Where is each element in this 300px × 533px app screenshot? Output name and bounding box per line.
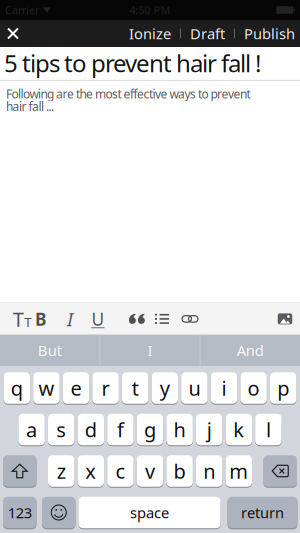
button[interactable]: v [137, 455, 163, 487]
button[interactable]: I [57, 306, 83, 332]
button[interactable]: h [166, 414, 193, 445]
button[interactable]: Ionize [129, 24, 171, 43]
staticText: y [160, 375, 170, 401]
button[interactable]: i [211, 372, 237, 404]
button[interactable]: B [28, 306, 54, 332]
button[interactable]: y [152, 372, 178, 404]
button[interactable]: r [92, 372, 119, 404]
staticText: w [38, 375, 54, 401]
staticText: z [57, 458, 66, 484]
button[interactable]: a [18, 414, 45, 445]
button[interactable] [123, 306, 149, 332]
staticText: q [11, 375, 23, 401]
button[interactable]: s [48, 414, 74, 445]
staticText: But [38, 340, 62, 360]
staticText: n [203, 458, 215, 484]
button[interactable]: x [78, 455, 104, 487]
staticText: c [115, 458, 125, 484]
staticText: u [188, 375, 200, 401]
button[interactable]: w [33, 372, 60, 404]
button[interactable]: Publish [244, 24, 300, 43]
button[interactable]: 123 [3, 497, 36, 528]
staticText: Publish [244, 24, 295, 43]
button[interactable]: e [63, 372, 89, 404]
button[interactable] [42, 497, 75, 528]
button[interactable]: q [4, 372, 30, 404]
staticText: 5 tips to prevent hair fall ! [4, 47, 261, 79]
staticText: Carrier [5, 3, 39, 17]
staticText: U [91, 307, 104, 330]
button[interactable] [272, 306, 298, 332]
staticText: j [207, 416, 212, 443]
button[interactable]: p [270, 372, 296, 404]
button[interactable]: f [107, 414, 134, 445]
button[interactable] [0, 28, 28, 38]
staticText: f [117, 416, 124, 443]
staticText: s [56, 416, 66, 443]
staticText: a [26, 416, 37, 443]
staticText: e [70, 375, 81, 401]
button[interactable] [177, 306, 203, 332]
button[interactable]: t [122, 372, 148, 404]
staticText: d [85, 416, 97, 443]
button[interactable]: c [107, 455, 134, 487]
button[interactable]: d [78, 414, 104, 445]
button[interactable]: return [227, 497, 297, 528]
button[interactable]: l [255, 414, 282, 445]
staticText: And [237, 340, 264, 360]
staticText: Ionize [129, 24, 171, 43]
staticText: return [241, 503, 284, 522]
staticText: i [221, 375, 226, 401]
button[interactable]: j [196, 414, 222, 445]
button[interactable]: m [226, 455, 252, 487]
staticText: 4:50 PM [129, 3, 170, 17]
staticText: k [233, 416, 244, 443]
button[interactable]: space [78, 497, 220, 528]
button[interactable] [3, 455, 36, 487]
staticText: o [248, 375, 260, 401]
button[interactable]: z [48, 455, 74, 487]
staticText: I [147, 340, 152, 360]
button[interactable]: I [100, 334, 200, 366]
staticText: hair fall ... [6, 98, 54, 114]
button[interactable] [263, 455, 297, 487]
staticText: g [144, 416, 156, 443]
button[interactable]: g [137, 414, 163, 445]
staticText: m [229, 458, 248, 484]
button[interactable]: o [240, 372, 267, 404]
button[interactable]: U [85, 306, 111, 332]
staticText: h [174, 416, 186, 443]
button[interactable]: n [196, 455, 222, 487]
staticText: space [130, 503, 169, 522]
button[interactable]: Draft [190, 24, 225, 43]
staticText: 123 [8, 503, 32, 522]
staticText: t [132, 375, 139, 401]
button[interactable]: b [166, 455, 193, 487]
staticText: T [13, 306, 24, 332]
staticText: l [266, 416, 271, 443]
staticText: Following are the most effective ways to… [6, 86, 250, 102]
button[interactable]: k [226, 414, 252, 445]
staticText: B [35, 307, 47, 330]
staticText: b [174, 458, 186, 484]
staticText: I [67, 306, 73, 331]
staticText: T [24, 313, 31, 331]
staticText: r [102, 375, 110, 401]
button[interactable]: T [9, 306, 35, 332]
staticText: x [85, 458, 96, 484]
staticText: Draft [190, 24, 225, 43]
button[interactable]: u [181, 372, 208, 404]
button[interactable]: And [201, 334, 300, 366]
button[interactable]: But [0, 334, 99, 366]
button[interactable] [149, 306, 175, 332]
staticText: p [277, 375, 289, 401]
staticText: v [145, 458, 155, 484]
